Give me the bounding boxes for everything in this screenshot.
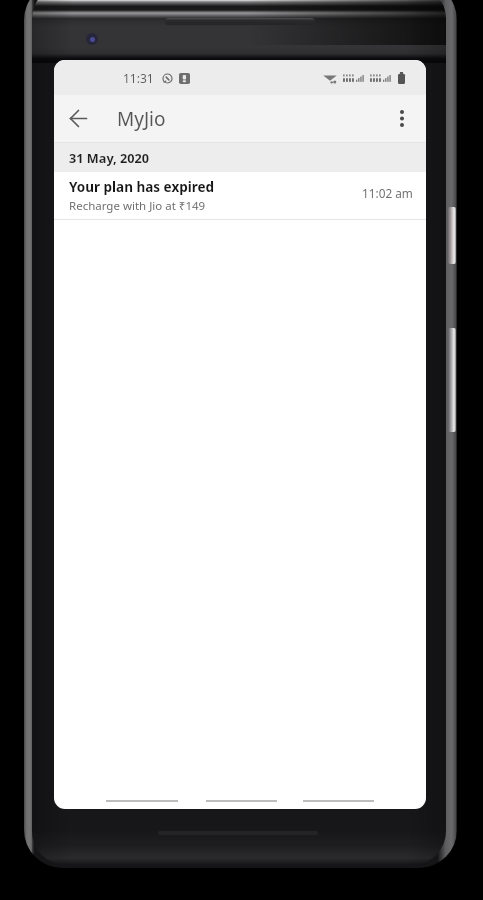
staticText: Your plan has expired — [69, 178, 215, 196]
staticText: MyJio — [117, 106, 166, 132]
button[interactable]: Your plan has expired — [54, 172, 426, 219]
staticText: 11:02 am — [362, 185, 413, 201]
staticText: 11:31 — [123, 70, 154, 86]
staticText: 31 May, 2020 — [69, 149, 150, 166]
staticText: Recharge with Jio at ₹149 — [69, 198, 206, 214]
button[interactable]: Back — [54, 95, 102, 142]
button[interactable]: More options — [378, 95, 426, 142]
